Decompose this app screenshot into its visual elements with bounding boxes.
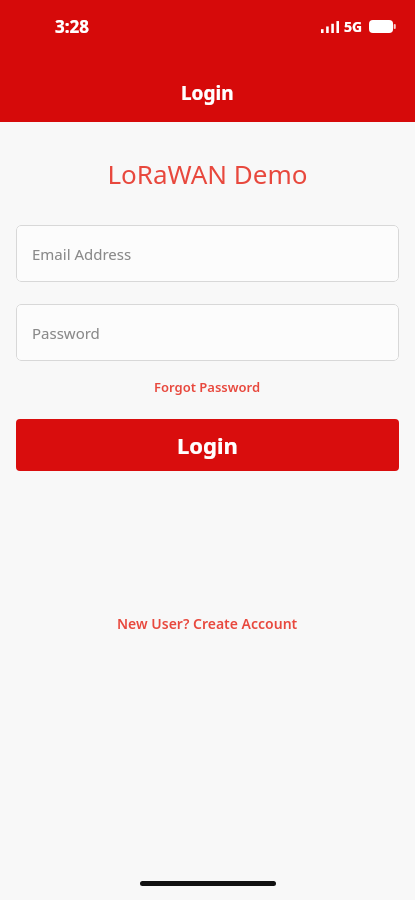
staticText: 5G	[344, 17, 363, 36]
button[interactable]: New User? Create Account	[109, 611, 306, 636]
staticText: Password	[32, 323, 100, 343]
staticText: Forgot Password	[154, 378, 261, 396]
other: Cellular signal	[321, 21, 339, 33]
staticText: Email Address	[32, 244, 132, 264]
staticText: Login	[181, 80, 234, 106]
other: Battery	[369, 20, 397, 33]
staticText: LoRaWAN Demo	[0, 156, 415, 191]
staticText: New User? Create Account	[117, 614, 298, 633]
staticText: Login	[177, 430, 238, 460]
button[interactable]: Password	[16, 304, 399, 361]
button[interactable]: Email Address	[16, 225, 399, 282]
button[interactable]: Login	[16, 419, 399, 471]
button[interactable]: Forgot Password	[146, 375, 269, 399]
staticText: 3:28	[55, 15, 89, 38]
